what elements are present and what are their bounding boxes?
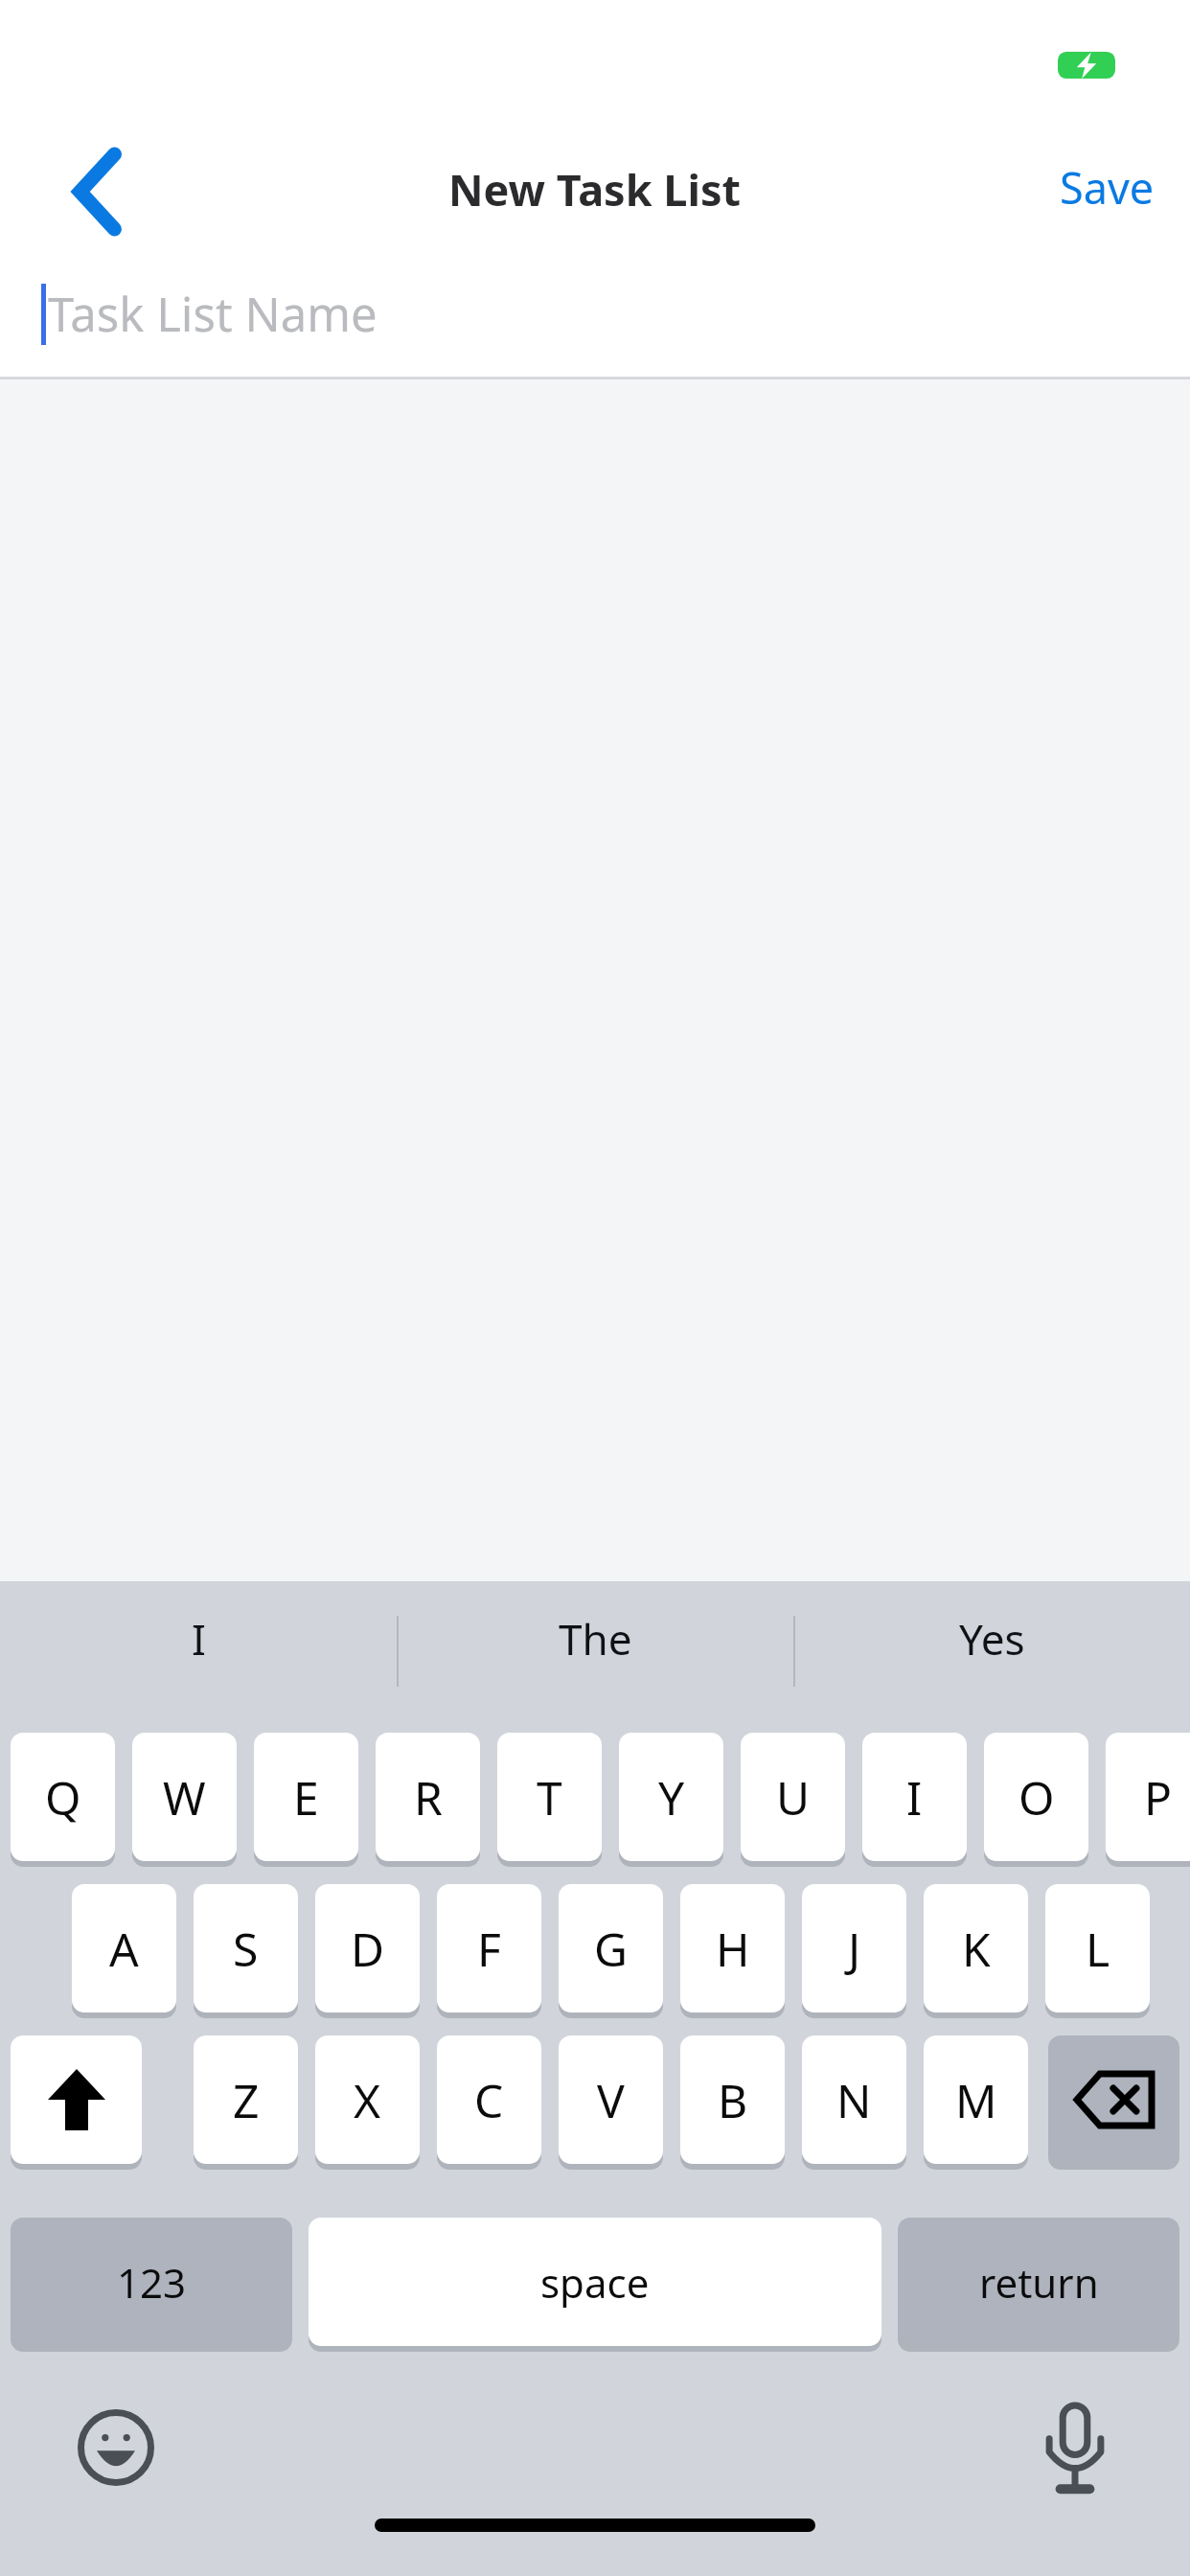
button[interactable]: Shift (11, 2035, 142, 2164)
button[interactable]: Task List Name (0, 257, 1190, 374)
button[interactable]: K (924, 1884, 1028, 2012)
staticText: 123 (117, 2255, 187, 2310)
button[interactable]: A (72, 1884, 176, 2012)
staticText: New Task List (448, 160, 742, 218)
staticText: J (848, 1918, 861, 1980)
staticText: F (477, 1918, 501, 1980)
button[interactable]: D (315, 1884, 420, 2012)
staticText: E (293, 1766, 319, 1828)
staticText: L (1086, 1918, 1110, 1980)
staticText: return (979, 2255, 1099, 2310)
button[interactable]: V (559, 2035, 663, 2164)
button[interactable]: B (680, 2035, 785, 2164)
button[interactable]: Z (194, 2035, 298, 2164)
staticText: W (163, 1766, 206, 1828)
staticText: P (1144, 1766, 1173, 1828)
staticText: Save (1060, 158, 1155, 217)
staticText: X (354, 2069, 381, 2131)
button[interactable]: Yes (793, 1581, 1190, 1696)
button[interactable]: H (680, 1884, 785, 2012)
staticText: U (776, 1766, 811, 1828)
button[interactable]: C (437, 2035, 541, 2164)
staticText: B (718, 2069, 748, 2131)
button[interactable]: J (802, 1884, 906, 2012)
button[interactable]: S (194, 1884, 298, 2012)
staticText: K (962, 1918, 991, 1980)
staticText: M (955, 2069, 997, 2131)
staticText: A (109, 1918, 139, 1980)
staticText: R (414, 1766, 443, 1828)
button[interactable]: Save (996, 144, 1155, 230)
button[interactable]: P (1106, 1733, 1190, 1861)
button[interactable]: Dictation (1021, 2394, 1129, 2501)
staticText: T (537, 1766, 562, 1828)
staticText: Q (45, 1766, 81, 1828)
button[interactable]: space (309, 2218, 881, 2346)
button[interactable]: L (1045, 1884, 1150, 2012)
staticText: O (1018, 1766, 1055, 1828)
button[interactable]: Y (619, 1733, 723, 1861)
button[interactable]: Emoji keyboard (62, 2394, 170, 2501)
staticText: space (540, 2255, 650, 2310)
button[interactable]: Back (48, 134, 148, 249)
staticText: H (716, 1918, 750, 1980)
button[interactable]: F (437, 1884, 541, 2012)
button[interactable]: O (984, 1733, 1088, 1861)
button[interactable]: Backspace (1048, 2035, 1179, 2164)
staticText: Task List Name (48, 282, 378, 346)
button[interactable]: U (741, 1733, 845, 1861)
button[interactable]: T (497, 1733, 602, 1861)
button[interactable]: The (397, 1581, 793, 1696)
staticText: V (597, 2069, 625, 2131)
staticText: I (906, 1766, 923, 1828)
staticText: S (233, 1918, 259, 1980)
button[interactable]: Q (11, 1733, 115, 1861)
staticText: G (594, 1918, 628, 1980)
button[interactable]: N (802, 2035, 906, 2164)
button[interactable]: X (315, 2035, 420, 2164)
button[interactable]: R (376, 1733, 480, 1861)
button[interactable]: M (924, 2035, 1028, 2164)
button[interactable]: G (559, 1884, 663, 2012)
button[interactable]: I (0, 1581, 397, 1696)
staticText: The (559, 1610, 632, 1667)
staticText: Yes (959, 1610, 1025, 1667)
staticText: D (351, 1918, 385, 1980)
staticText: Z (233, 2069, 260, 2131)
button[interactable]: return (898, 2218, 1179, 2346)
button[interactable]: 123 (11, 2218, 292, 2346)
staticText: Y (658, 1766, 685, 1828)
button[interactable]: I (862, 1733, 967, 1861)
staticText: C (474, 2069, 504, 2131)
staticText: N (836, 2069, 872, 2131)
staticText: I (192, 1610, 206, 1667)
button[interactable]: E (254, 1733, 358, 1861)
button[interactable]: W (132, 1733, 237, 1861)
